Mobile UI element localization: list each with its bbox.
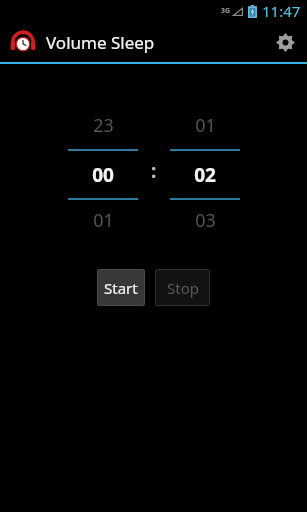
button[interactable]: Settings: [263, 22, 307, 62]
staticText: 03: [195, 208, 216, 233]
staticText: 01: [195, 113, 216, 138]
staticText: 23: [93, 113, 114, 138]
staticText: Volume Sleep: [46, 31, 155, 54]
staticText: Stop: [167, 278, 199, 298]
button[interactable]: Stop: [155, 269, 210, 306]
staticText: Start: [104, 278, 138, 298]
staticText: 11:47: [262, 1, 301, 21]
staticText: :: [151, 158, 157, 184]
staticText: 01: [93, 208, 114, 233]
button[interactable]: Start: [97, 269, 145, 306]
button[interactable]: 01: [168, 101, 242, 241]
staticText: 3G: [221, 6, 231, 16]
button[interactable]: 23: [66, 101, 140, 241]
staticText: 00: [92, 162, 114, 188]
staticText: 02: [194, 162, 216, 188]
